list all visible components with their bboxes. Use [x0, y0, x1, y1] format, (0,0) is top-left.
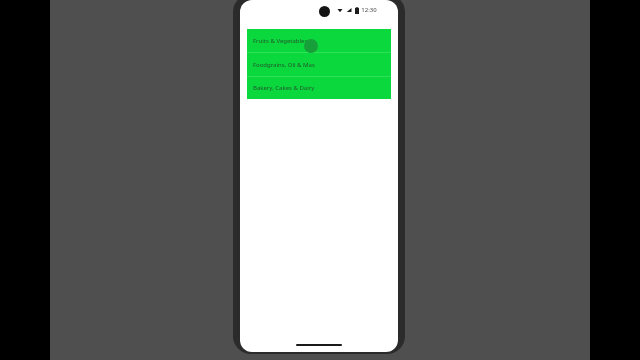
staticText: Bakery, Cakes & Dairy	[253, 84, 315, 92]
staticText: 12:30	[361, 6, 377, 14]
staticText: Fruits & Vegetables	[253, 37, 308, 45]
button[interactable]: Fruits & Vegetables	[247, 29, 391, 52]
button[interactable]: Foodgrains, Oil & Mas	[247, 53, 391, 76]
staticText: Foodgrains, Oil & Mas	[253, 61, 315, 69]
button[interactable]: Bakery, Cakes & Dairy	[247, 77, 391, 99]
